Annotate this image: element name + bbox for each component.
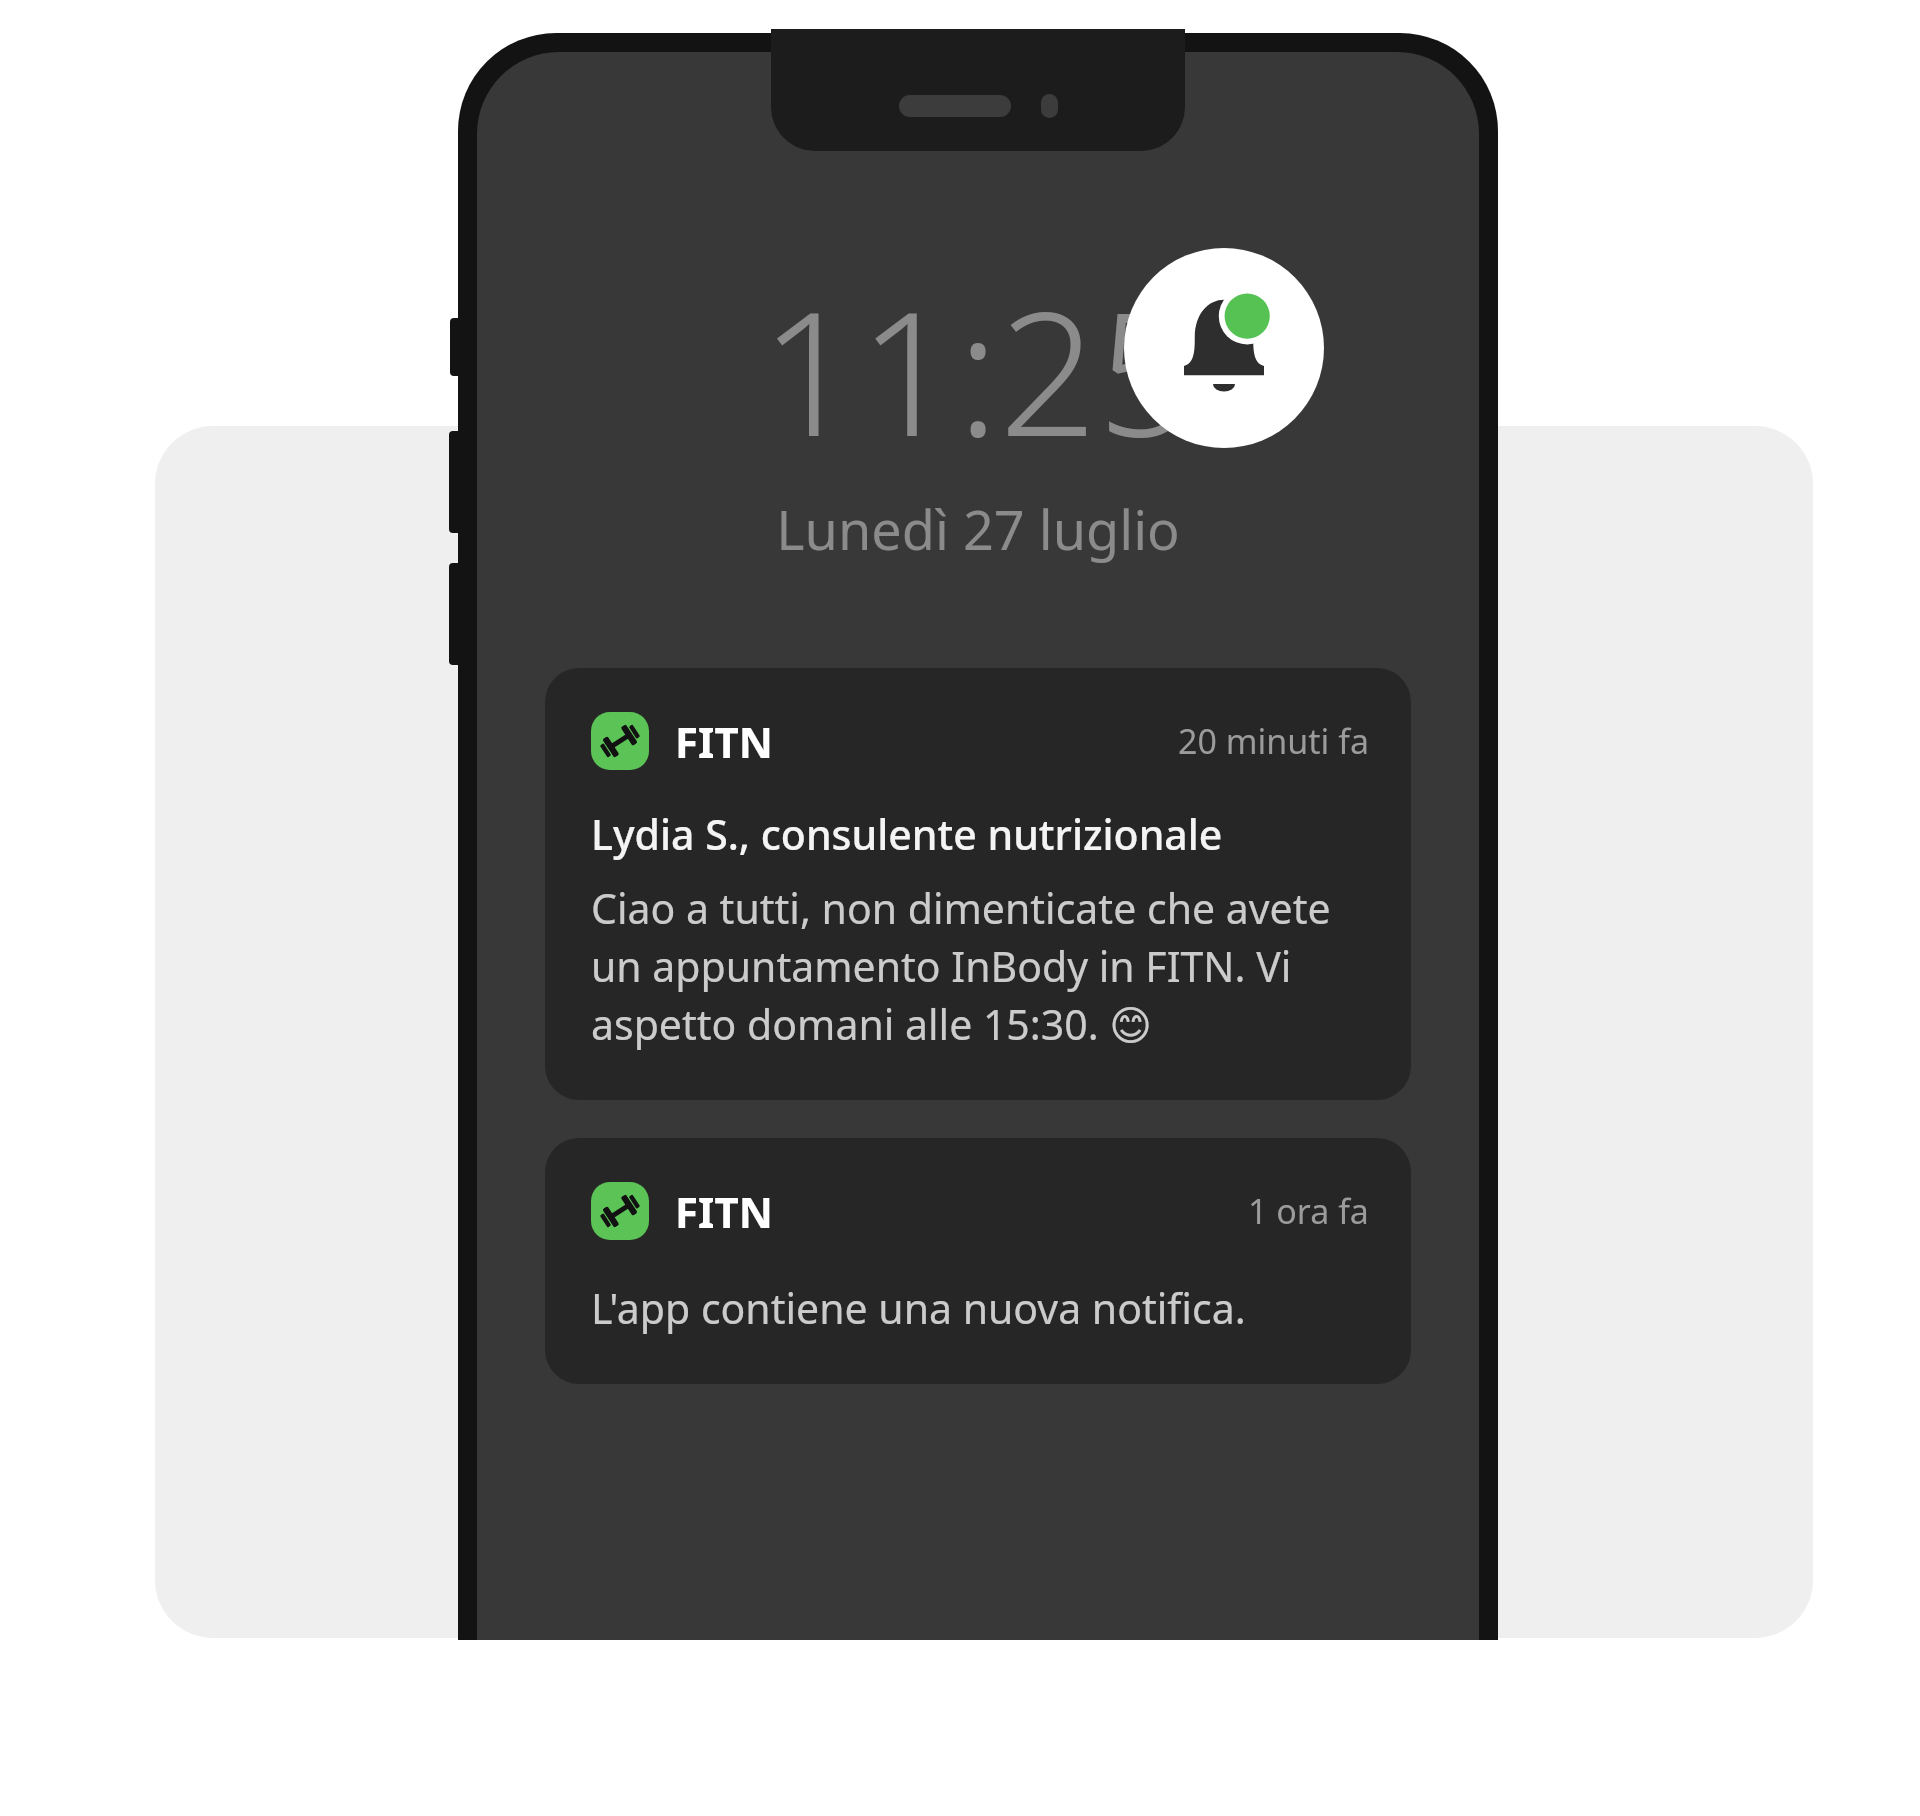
button[interactable]: FITN [545,1138,1411,1384]
staticText: 1 ora fa [1248,1188,1369,1234]
staticText: FITN [675,713,773,770]
staticText: FITN [675,1183,773,1240]
staticText: Lydia S., consulente nutrizionale [591,806,1223,862]
button[interactable]: Notifications [1124,248,1324,448]
staticText: Lunedì 27 luglio [477,492,1479,566]
staticText: Ciao a tutti, non dimenticate che avete … [591,880,1369,1052]
staticText: 20 minuti fa [1178,718,1369,764]
staticText: L'app contiene una nuova notifica. [591,1280,1246,1336]
button[interactable]: FITN [545,668,1411,1100]
staticText: 11:25 [477,252,1479,486]
